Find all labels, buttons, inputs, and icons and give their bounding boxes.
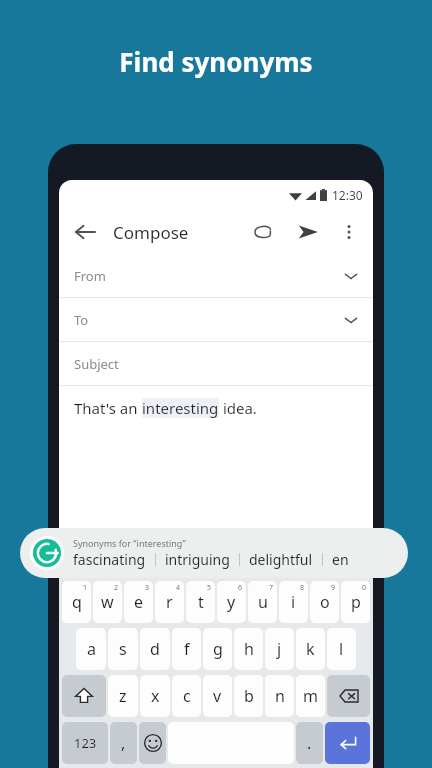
- button[interactable]: p: [341, 581, 370, 623]
- staticText: 6: [238, 583, 243, 593]
- staticText: a: [87, 638, 96, 660]
- staticText: u: [258, 591, 268, 613]
- staticText: o: [320, 591, 330, 613]
- staticText: n: [275, 685, 285, 707]
- button[interactable]: x: [140, 675, 170, 717]
- staticText: f: [184, 638, 190, 660]
- staticText: p: [351, 591, 361, 613]
- staticText: t: [198, 591, 204, 613]
- staticText: 2: [114, 583, 119, 593]
- staticText: Find synonyms: [119, 44, 313, 79]
- staticText: idea.: [219, 398, 257, 418]
- staticText: x: [151, 685, 160, 707]
- staticText: g: [213, 638, 223, 660]
- button[interactable]: n: [265, 675, 294, 717]
- staticText: z: [119, 685, 127, 707]
- staticText: Compose: [113, 221, 189, 244]
- button[interactable]: Enter: [325, 722, 370, 764]
- button[interactable]: Attach file: [251, 221, 273, 243]
- button[interactable]: s: [108, 628, 138, 670]
- staticText: s: [119, 638, 127, 660]
- staticText: 3: [145, 583, 150, 593]
- button[interactable]: h: [234, 628, 263, 670]
- button[interactable]: u: [248, 581, 277, 623]
- staticText: c: [183, 685, 191, 707]
- button[interactable]: c: [172, 675, 201, 717]
- button[interactable]: More options: [339, 222, 359, 242]
- staticText: b: [244, 685, 254, 707]
- staticText: v: [213, 685, 222, 707]
- button[interactable]: q: [62, 581, 91, 623]
- staticText: w: [101, 591, 114, 613]
- staticText: 5: [207, 583, 212, 593]
- button[interactable]: y: [217, 581, 246, 623]
- staticText: 7: [269, 583, 274, 593]
- button[interactable]: a: [76, 628, 106, 670]
- staticText: 12:30: [332, 187, 363, 203]
- staticText: l: [339, 638, 344, 660]
- staticText: intriguing: [165, 550, 230, 569]
- staticText: fascinating: [73, 550, 146, 569]
- staticText: 1: [83, 583, 88, 593]
- staticText: From: [74, 267, 106, 285]
- button[interactable]: delightful: [249, 550, 313, 569]
- button[interactable]: Subject: [59, 342, 373, 385]
- other: Grammarly: [30, 536, 64, 570]
- button[interactable]: From: [59, 254, 373, 297]
- button[interactable]: g: [203, 628, 232, 670]
- staticText: m: [303, 685, 318, 707]
- button[interactable]: e: [124, 581, 153, 623]
- staticText: Subject: [74, 355, 119, 373]
- staticText: r: [166, 591, 173, 613]
- staticText: d: [150, 638, 160, 660]
- button[interactable]: Back: [73, 220, 97, 244]
- button[interactable]: To: [59, 298, 373, 341]
- staticText: k: [306, 638, 315, 660]
- button[interactable]: .: [296, 722, 323, 764]
- button[interactable]: i: [279, 581, 308, 623]
- staticText: delightful: [249, 550, 313, 569]
- staticText: ,: [121, 732, 126, 754]
- button[interactable]: Send: [297, 221, 319, 243]
- button[interactable]: d: [140, 628, 170, 670]
- button[interactable]: f: [172, 628, 201, 670]
- staticText: y: [227, 591, 236, 613]
- button[interactable]: k: [296, 628, 325, 670]
- staticText: q: [72, 591, 82, 613]
- button[interactable]: o: [310, 581, 339, 623]
- button[interactable]: r: [155, 581, 184, 623]
- staticText: interesting: [142, 398, 219, 418]
- button[interactable]: z: [108, 675, 138, 717]
- button[interactable]: l: [327, 628, 356, 670]
- button[interactable]: Emoji: [139, 722, 166, 764]
- button[interactable]: Shift: [62, 675, 106, 717]
- button[interactable]: fascinating: [73, 550, 146, 569]
- staticText: j: [277, 638, 282, 660]
- staticText: h: [244, 638, 254, 660]
- staticText: 9: [331, 583, 336, 593]
- button[interactable]: intriguing: [165, 550, 230, 569]
- staticText: e: [134, 591, 144, 613]
- staticText: To: [74, 311, 89, 329]
- staticText: 0: [362, 583, 367, 593]
- staticText: en: [332, 550, 349, 569]
- button[interactable]: v: [203, 675, 232, 717]
- button[interactable]: 123: [62, 722, 108, 764]
- button[interactable]: t: [186, 581, 215, 623]
- button[interactable]: ,: [110, 722, 137, 764]
- button[interactable]: w: [93, 581, 122, 623]
- button[interactable]: j: [265, 628, 294, 670]
- button[interactable]: Grammarly: [20, 528, 408, 578]
- staticText: 123: [74, 734, 97, 752]
- button[interactable]: Backspace: [327, 675, 370, 717]
- staticText: .: [307, 732, 312, 754]
- staticText: i: [291, 591, 296, 613]
- button[interactable]: m: [296, 675, 325, 717]
- staticText: 8: [300, 583, 305, 593]
- button[interactable]: en: [332, 550, 349, 569]
- staticText: Synonyms for “interesting”: [73, 537, 186, 549]
- button[interactable]: b: [234, 675, 263, 717]
- staticText: That's an: [74, 398, 142, 418]
- staticText: 4: [176, 583, 181, 593]
